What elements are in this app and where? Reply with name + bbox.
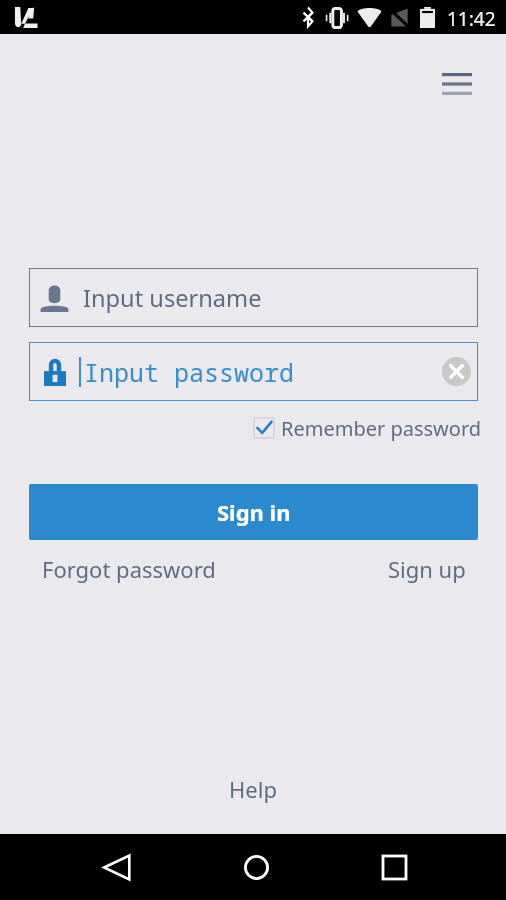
button[interactable]: Sign in bbox=[29, 484, 478, 540]
button[interactable]: Recent apps bbox=[364, 837, 424, 897]
staticText: Remember password bbox=[281, 415, 482, 442]
button[interactable]: Remember password bbox=[253, 413, 482, 443]
staticText: Sign in bbox=[217, 497, 291, 527]
button[interactable]: Forgot password bbox=[36, 548, 222, 590]
staticText: Sign up bbox=[388, 554, 466, 584]
button[interactable]: Input username bbox=[29, 268, 478, 327]
button[interactable]: Home bbox=[226, 837, 286, 897]
button[interactable]: Sign up bbox=[382, 548, 472, 590]
button[interactable]: Back bbox=[87, 837, 147, 897]
button[interactable]: Help bbox=[221, 766, 285, 812]
button[interactable]: Input password bbox=[29, 342, 478, 401]
staticText: Input password bbox=[84, 355, 295, 389]
staticText: 11:42 bbox=[447, 6, 496, 32]
button[interactable]: Clear password bbox=[442, 357, 471, 386]
staticText: Input username bbox=[83, 282, 262, 314]
button[interactable]: Menu bbox=[433, 60, 481, 108]
staticText: Forgot password bbox=[42, 554, 216, 584]
staticText: Help bbox=[229, 774, 277, 804]
